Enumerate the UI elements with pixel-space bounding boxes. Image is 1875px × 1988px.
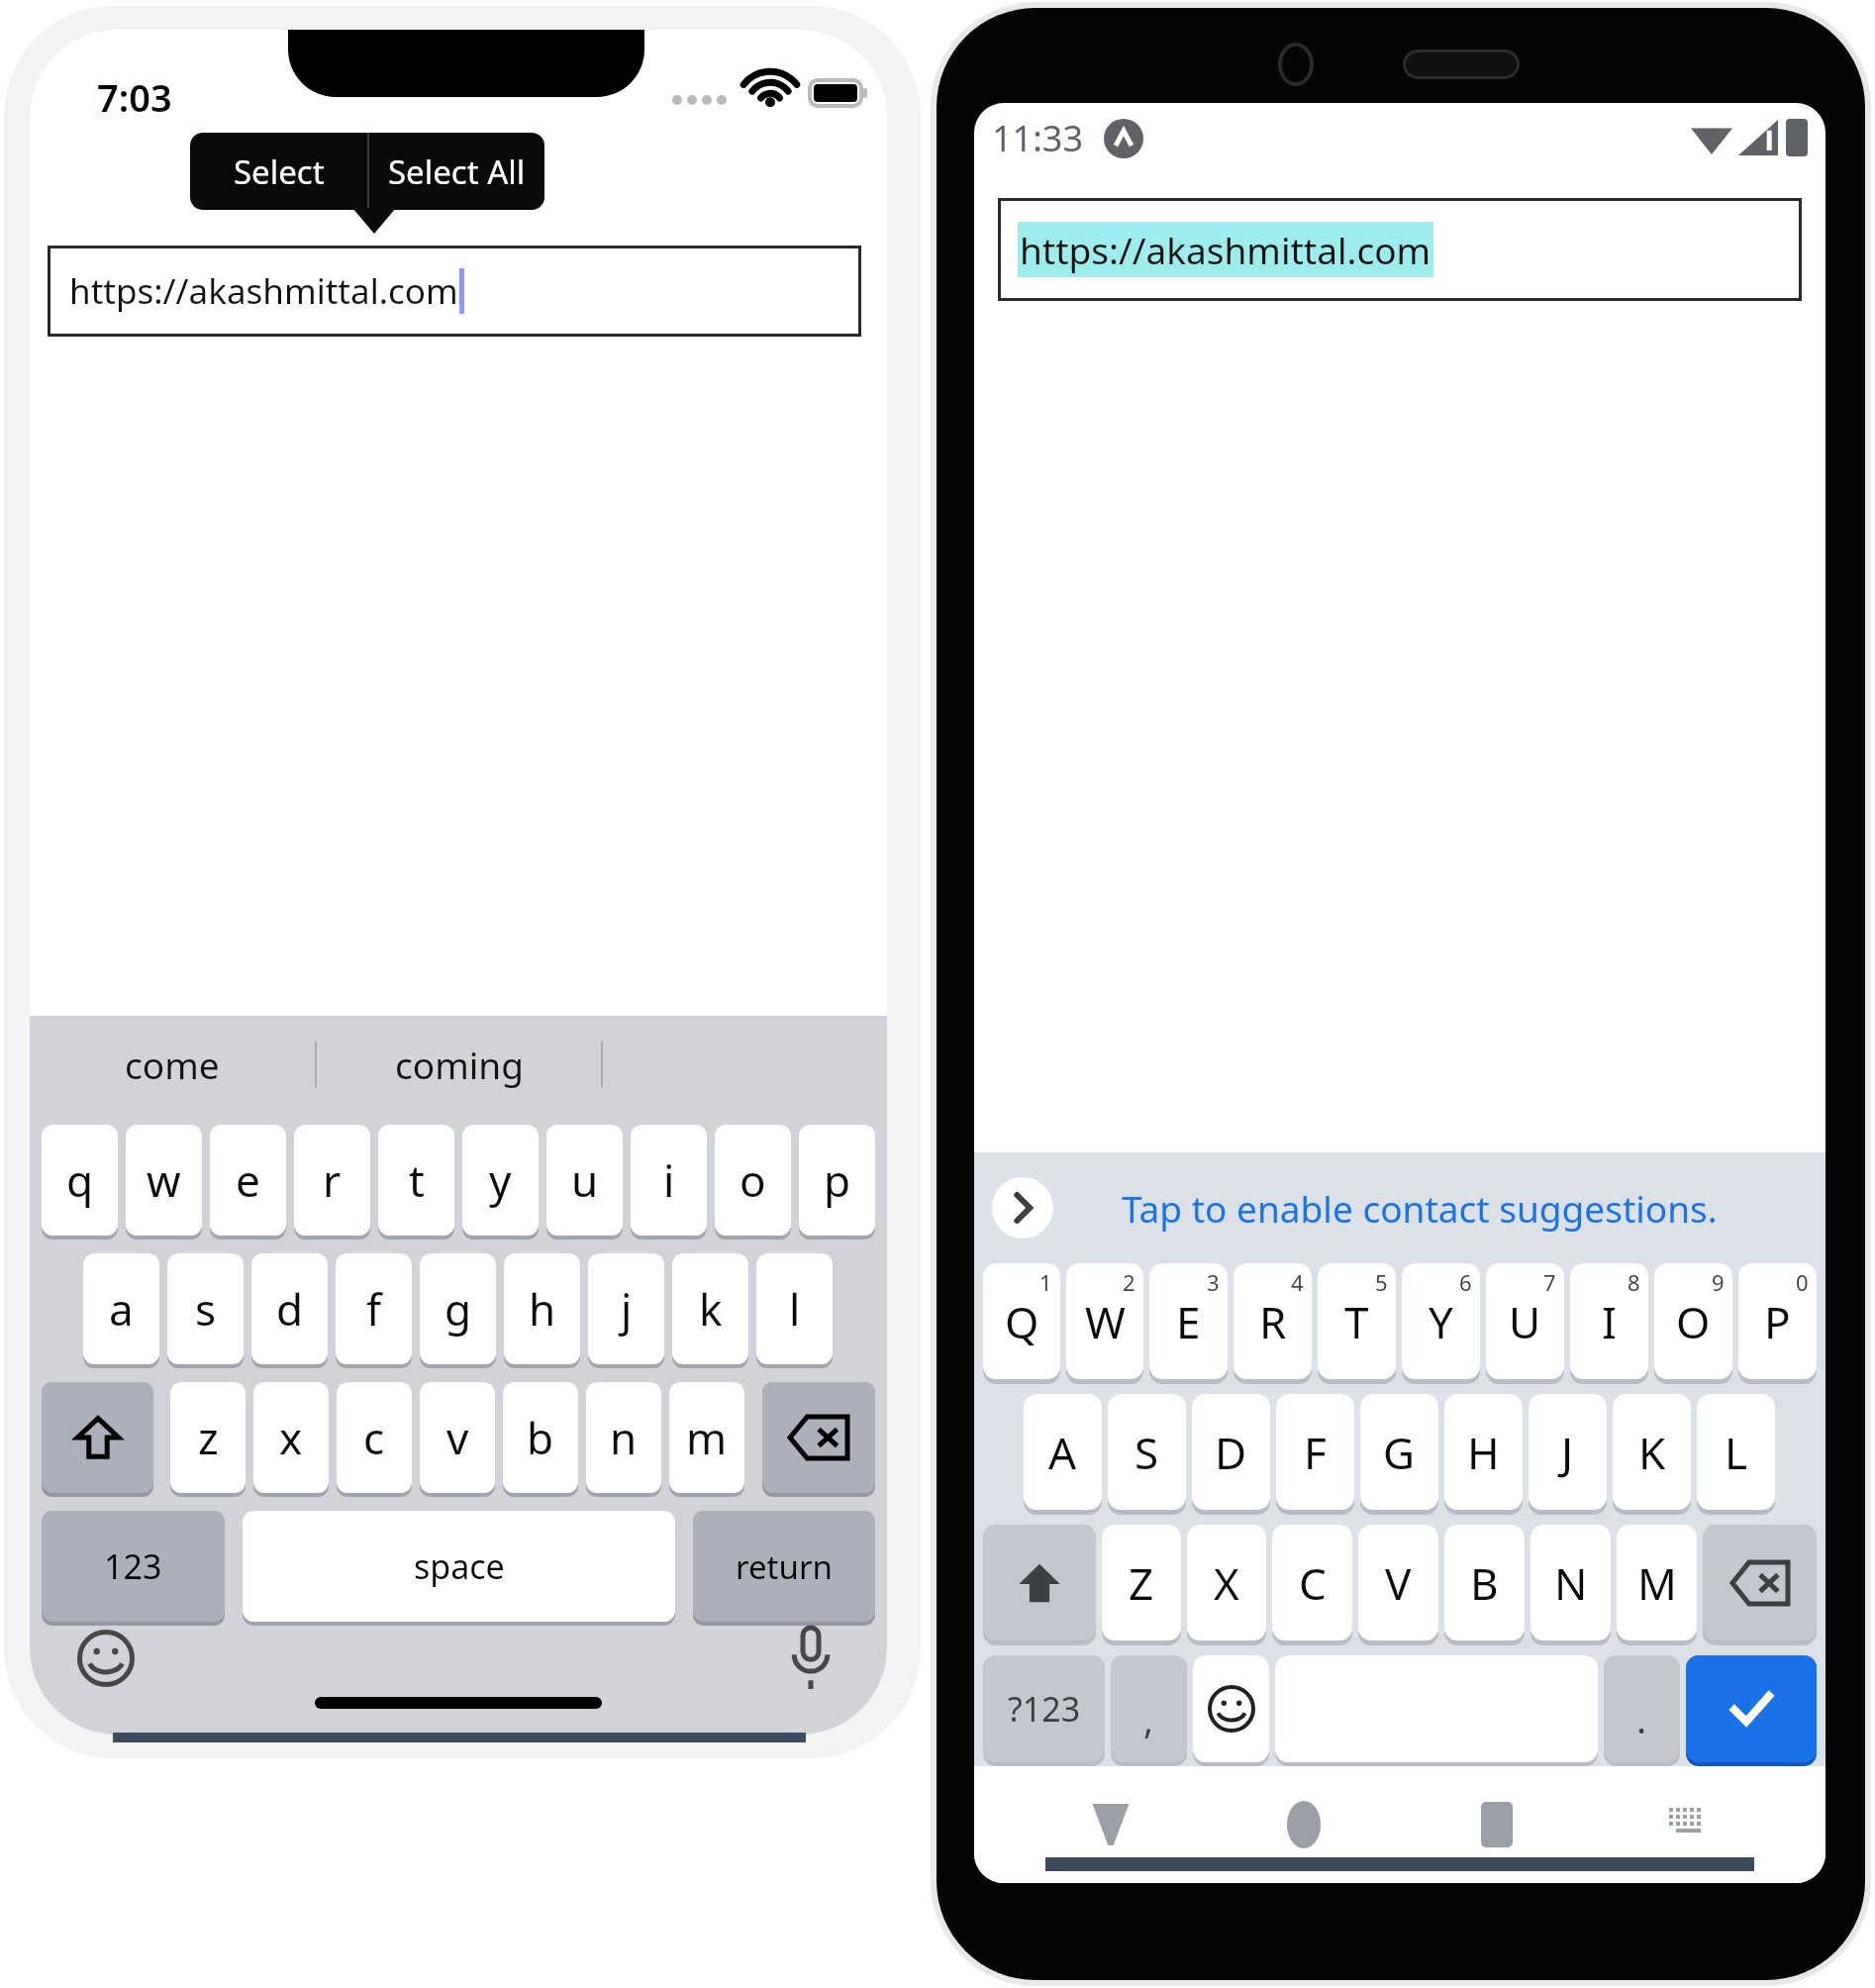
button[interactable]: U <box>1486 1263 1564 1379</box>
button[interactable]: W <box>1066 1263 1143 1379</box>
button[interactable]: space <box>243 1511 675 1622</box>
button[interactable]: x <box>253 1382 329 1493</box>
button[interactable]: c <box>337 1382 412 1493</box>
button[interactable]: https://akashmittal.com <box>998 198 1802 301</box>
button[interactable]: 123 <box>42 1511 225 1622</box>
button[interactable]: C <box>1272 1525 1352 1640</box>
button[interactable]: B <box>1444 1525 1525 1640</box>
button[interactable]: n <box>586 1382 661 1493</box>
button[interactable] <box>1275 1655 1598 1762</box>
button[interactable]: Emoji <box>1193 1655 1269 1762</box>
button[interactable]: Y <box>1402 1263 1480 1379</box>
button[interactable]: F <box>1276 1394 1354 1510</box>
button[interactable]: Q <box>983 1263 1060 1379</box>
staticText: 123 <box>104 1543 162 1589</box>
button[interactable]: q <box>42 1125 118 1236</box>
button[interactable]: P <box>1738 1263 1817 1379</box>
button[interactable]: y <box>462 1125 539 1236</box>
button[interactable]: b <box>503 1382 578 1493</box>
button[interactable]: m <box>669 1382 744 1493</box>
staticText: https://akashmittal.com <box>1020 225 1431 274</box>
staticText: o <box>740 1150 766 1210</box>
button[interactable]: R <box>1234 1263 1312 1379</box>
button[interactable]: r <box>294 1125 370 1236</box>
button[interactable]: Back <box>1014 1766 1207 1883</box>
button[interactable]: Backspace <box>1703 1525 1817 1640</box>
staticText: P <box>1764 1292 1791 1351</box>
button[interactable]: a <box>83 1253 159 1364</box>
staticText: 4 <box>1291 1267 1304 1297</box>
staticText: Select <box>234 149 325 194</box>
button[interactable]: I <box>1570 1263 1648 1379</box>
staticText: T <box>1344 1292 1369 1351</box>
staticText: return <box>736 1544 833 1589</box>
button[interactable]: H <box>1444 1394 1523 1510</box>
button[interactable]: Select All <box>369 133 544 210</box>
staticText: G <box>1383 1423 1416 1482</box>
button[interactable]: M <box>1617 1525 1697 1640</box>
staticText: M <box>1637 1553 1677 1613</box>
button[interactable]: h <box>504 1253 580 1364</box>
button[interactable]: s <box>167 1253 244 1364</box>
button[interactable]: Emoji keyboard <box>69 1622 143 1695</box>
staticText: Tap to enable contact suggestions. <box>1122 1183 1718 1233</box>
button[interactable]: V <box>1358 1525 1438 1640</box>
button[interactable]: K <box>1613 1394 1691 1510</box>
button[interactable]: Dictation <box>774 1622 847 1695</box>
button[interactable]: J <box>1529 1394 1607 1510</box>
button[interactable]: . <box>1604 1655 1680 1762</box>
staticText: Q <box>1005 1292 1039 1351</box>
button[interactable]: https://akashmittal.com <box>48 246 861 337</box>
button[interactable]: Tap to enable contact suggestions. <box>1053 1152 1786 1263</box>
button[interactable]: k <box>672 1253 748 1364</box>
button[interactable]: Shift <box>983 1525 1096 1640</box>
button[interactable]: d <box>251 1253 328 1364</box>
staticText: https://akashmittal.com <box>69 267 458 315</box>
button[interactable]: N <box>1530 1525 1611 1640</box>
button[interactable]: Done <box>1686 1655 1817 1762</box>
button[interactable]: j <box>588 1253 664 1364</box>
button[interactable]: Home <box>1207 1766 1400 1883</box>
button[interactable]: E <box>1149 1263 1228 1379</box>
button[interactable]: D <box>1192 1394 1270 1510</box>
button[interactable]: Expand suggestions <box>992 1177 1053 1239</box>
button[interactable]: L <box>1697 1394 1775 1510</box>
staticText: J <box>1561 1423 1574 1482</box>
staticText: C <box>1299 1553 1327 1613</box>
button[interactable]: come <box>30 1016 315 1113</box>
button[interactable]: ?123 <box>983 1655 1105 1762</box>
staticText: j <box>621 1279 633 1339</box>
button[interactable]: v <box>420 1382 495 1493</box>
button[interactable]: z <box>170 1382 246 1493</box>
staticText: N <box>1554 1553 1588 1613</box>
button[interactable]: A <box>1024 1394 1102 1510</box>
button[interactable]: t <box>378 1125 454 1236</box>
button[interactable]: coming <box>317 1016 601 1113</box>
button[interactable]: w <box>126 1125 202 1236</box>
button[interactable]: i <box>631 1125 707 1236</box>
button[interactable]: O <box>1654 1263 1732 1379</box>
staticText: V <box>1385 1553 1412 1613</box>
button[interactable]: u <box>546 1125 623 1236</box>
button[interactable]: o <box>715 1125 791 1236</box>
button[interactable]: p <box>799 1125 875 1236</box>
button[interactable]: , <box>1111 1655 1187 1762</box>
button[interactable]: f <box>336 1253 412 1364</box>
staticText: u <box>571 1150 599 1210</box>
button[interactable]: X <box>1187 1525 1266 1640</box>
button[interactable]: Switch keyboard <box>1593 1766 1786 1883</box>
button[interactable]: e <box>210 1125 286 1236</box>
button[interactable]: g <box>420 1253 496 1364</box>
button[interactable]: Recents <box>1400 1766 1593 1883</box>
button[interactable]: S <box>1108 1394 1186 1510</box>
button[interactable]: Backspace <box>762 1382 875 1493</box>
button[interactable]: Shift <box>42 1382 153 1493</box>
button[interactable]: return <box>693 1511 875 1622</box>
button[interactable]: G <box>1360 1394 1438 1510</box>
button[interactable]: T <box>1318 1263 1396 1379</box>
button[interactable]: Z <box>1102 1525 1181 1640</box>
staticText: . <box>1636 1693 1647 1744</box>
button[interactable]: Select <box>190 133 367 210</box>
staticText: O <box>1676 1292 1711 1351</box>
button[interactable]: l <box>756 1253 833 1364</box>
